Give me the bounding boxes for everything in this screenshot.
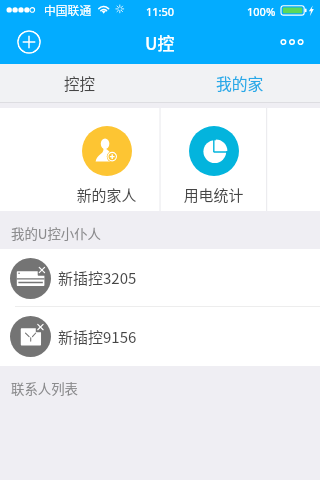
button[interactable]: 用电统计 xyxy=(160,108,267,211)
button[interactable]: 新插控3205 xyxy=(0,249,320,307)
button[interactable]: Add device xyxy=(17,30,41,54)
staticText: 控控 xyxy=(64,72,96,94)
button[interactable]: 控控 xyxy=(0,64,160,102)
staticText: 新的家人 xyxy=(53,184,160,206)
staticText: 联系人列表 xyxy=(11,378,78,397)
staticText: 我的U控小仆人 xyxy=(11,223,101,242)
button[interactable]: More options xyxy=(281,32,307,52)
button[interactable]: 新插控9156 xyxy=(0,307,320,366)
staticText: 新插控9156 xyxy=(58,326,137,348)
staticText: 我的家 xyxy=(216,72,264,95)
button[interactable]: 我的家 xyxy=(160,64,320,102)
staticText: 11:50 xyxy=(146,4,175,19)
staticText: U控 xyxy=(145,30,175,55)
staticText: 用电统计 xyxy=(160,184,267,206)
button[interactable]: 新的家人 xyxy=(53,108,160,211)
staticText: 100% xyxy=(247,4,276,19)
staticText: 中国联通 xyxy=(44,1,92,18)
staticText: 新插控3205 xyxy=(58,267,137,289)
